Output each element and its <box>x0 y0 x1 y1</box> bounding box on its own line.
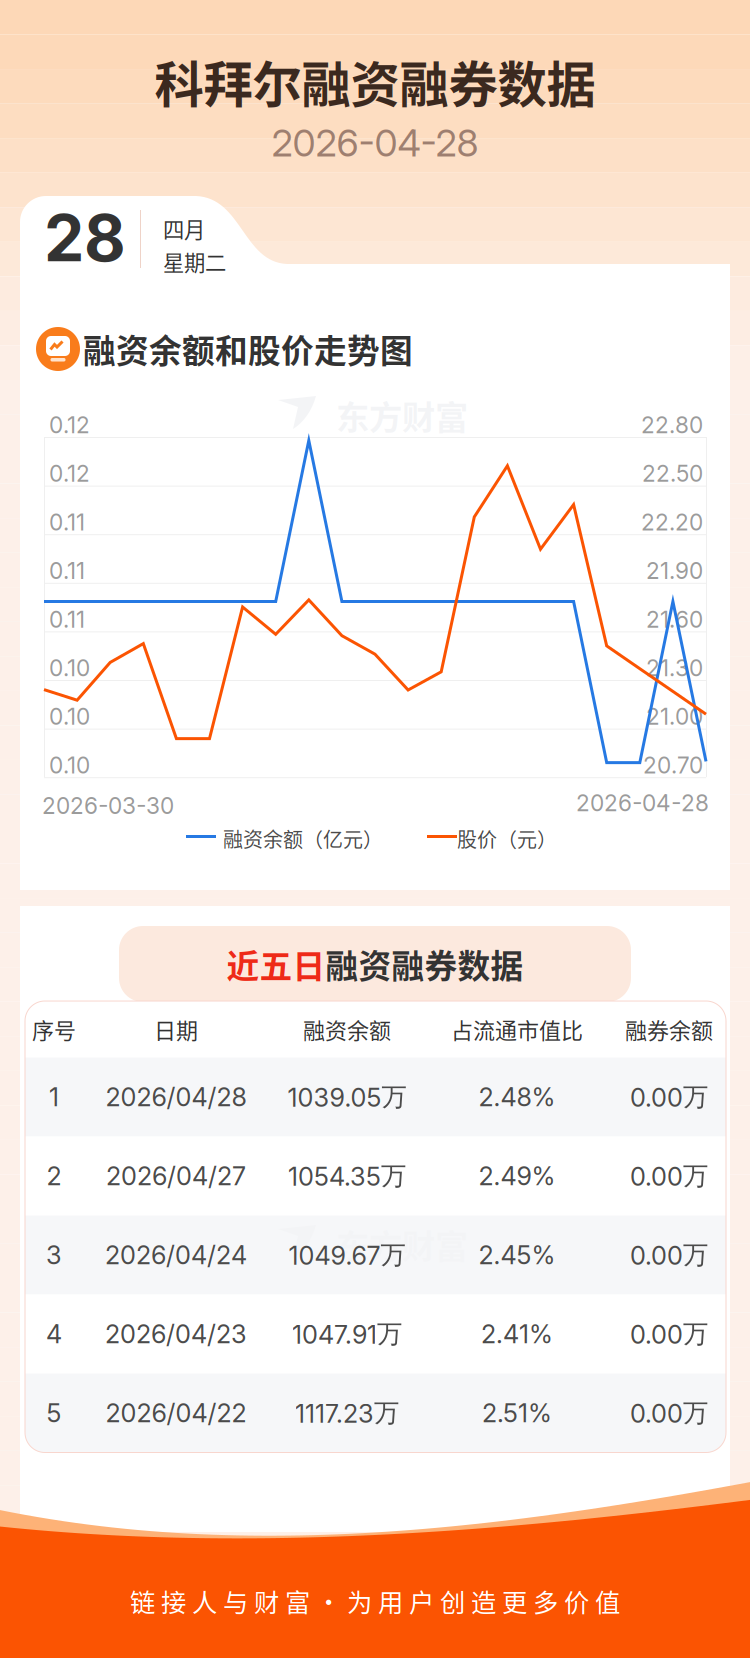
staticText: 3 <box>46 1240 62 1270</box>
staticText: 2026-03-30 <box>42 792 174 819</box>
staticText: 21.30 <box>646 654 703 682</box>
staticText: 序号 <box>32 1013 76 1045</box>
staticText: 四月 <box>163 213 205 244</box>
staticText: 0.12 <box>49 411 90 439</box>
staticText: 22.20 <box>641 508 703 536</box>
staticText: 0.11 <box>49 508 85 536</box>
staticText: 0.00万 <box>630 1239 708 1271</box>
staticText: 东方财富 <box>336 1220 468 1268</box>
staticText: 2 <box>46 1161 61 1191</box>
staticText: 21.00 <box>646 703 703 730</box>
staticText: 0.12 <box>49 460 90 487</box>
staticText: 20.70 <box>643 751 703 779</box>
staticText: 0.10 <box>49 703 90 730</box>
staticText: 21.90 <box>646 557 703 584</box>
staticText: 融资余额（亿元） <box>223 824 383 853</box>
staticText: 0.10 <box>49 751 90 779</box>
staticText: 1117.23万 <box>295 1397 399 1429</box>
staticText: 0.00万 <box>630 1397 708 1429</box>
staticText: 22.50 <box>642 460 703 487</box>
staticText: 近五日 <box>226 940 325 988</box>
staticText: 东方财富 <box>336 391 468 439</box>
staticText: 链 接 人 与 财 富 · 为 用 户 创 造 更 多 价 值 <box>130 1583 620 1619</box>
staticText: 星期二 <box>163 246 226 277</box>
staticText: 2026/04/23 <box>105 1319 247 1349</box>
staticText: 2026/04/24 <box>105 1240 247 1270</box>
staticText: 股价（元） <box>457 824 557 853</box>
staticText: 0.11 <box>49 606 85 633</box>
staticText: 0.00万 <box>630 1081 708 1113</box>
staticText: 2026/04/28 <box>105 1082 246 1112</box>
staticText: 2.51% <box>482 1398 552 1428</box>
staticText: 4 <box>46 1319 62 1349</box>
staticText: 2.41% <box>481 1319 553 1349</box>
staticText: 5 <box>46 1398 61 1428</box>
staticText: 1 <box>49 1082 59 1112</box>
staticText: 1054.35万 <box>288 1160 406 1192</box>
staticText: 融资余额 <box>303 1013 391 1045</box>
staticText: 科拜尔融资融券数据 <box>154 45 595 117</box>
staticText: 0.10 <box>49 654 90 682</box>
staticText: 2026/04/27 <box>106 1161 246 1191</box>
staticText: 融券余额 <box>625 1013 713 1045</box>
staticText: 2.48% <box>478 1082 555 1112</box>
staticText: 日期 <box>154 1013 198 1045</box>
staticText: 0.11 <box>49 557 85 584</box>
staticText: 0.00万 <box>630 1318 708 1350</box>
staticText: 28 <box>44 199 126 277</box>
staticText: 2026-04-28 <box>271 120 478 166</box>
staticText: 0.00万 <box>630 1160 708 1192</box>
staticText: 2026/04/22 <box>105 1398 246 1428</box>
staticText: 1047.91万 <box>292 1318 402 1350</box>
staticText: 融资融券数据 <box>325 940 523 988</box>
staticText: 21.60 <box>646 606 703 633</box>
staticText: 2026-04-28 <box>576 789 709 817</box>
staticText: 占流通市值比 <box>451 1013 583 1045</box>
staticText: 2.49% <box>478 1161 555 1191</box>
staticText: 1039.05万 <box>287 1081 406 1113</box>
staticText: 2.45% <box>478 1240 555 1270</box>
staticText: 22.80 <box>641 411 703 439</box>
staticText: 1049.67万 <box>288 1239 405 1271</box>
staticText: 融资余额和股价走势图 <box>83 325 413 372</box>
